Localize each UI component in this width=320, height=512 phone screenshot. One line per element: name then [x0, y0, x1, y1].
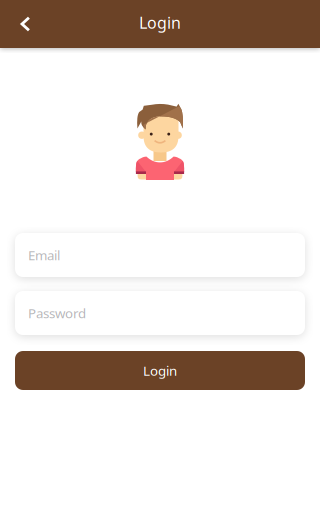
- staticText: Email: [28, 246, 60, 264]
- button[interactable]: Login: [15, 351, 305, 390]
- button[interactable]: Back: [4, 2, 48, 46]
- staticText: Password: [28, 304, 86, 322]
- staticText: Login: [139, 12, 181, 33]
- staticText: Login: [143, 362, 177, 379]
